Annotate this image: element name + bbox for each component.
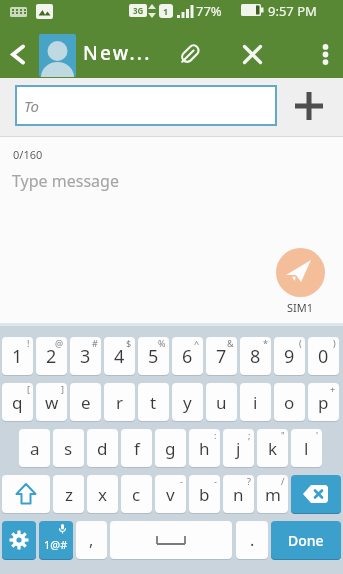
staticText: c <box>132 483 141 506</box>
button[interactable]: v <box>155 475 186 513</box>
button[interactable]: u <box>206 383 237 421</box>
button[interactable]: a <box>19 429 50 467</box>
staticText: 9:57 PM <box>268 2 317 20</box>
button[interactable]: k <box>257 429 288 467</box>
button[interactable]: z <box>53 475 84 513</box>
staticText: u <box>216 391 227 414</box>
staticText: g <box>165 437 176 460</box>
button[interactable]: 9 <box>274 337 305 375</box>
staticText: w <box>45 391 59 414</box>
button[interactable]: g <box>155 429 186 467</box>
button[interactable]: 3 <box>70 337 101 375</box>
staticText: + <box>330 383 336 395</box>
staticText: 9 <box>284 344 295 369</box>
button[interactable] <box>288 85 329 126</box>
staticText: i <box>253 391 258 414</box>
button[interactable]: 4 <box>104 337 135 375</box>
staticText: 77% <box>196 2 222 20</box>
button[interactable]: c <box>121 475 152 513</box>
staticText: ) <box>333 337 336 349</box>
staticText: - <box>214 475 217 487</box>
staticText: $ <box>126 337 132 349</box>
button[interactable] <box>276 248 325 297</box>
button[interactable]: s <box>53 429 84 467</box>
staticText: - <box>180 475 183 487</box>
staticText: New... <box>83 40 152 66</box>
button[interactable] <box>314 40 336 68</box>
button[interactable]: r <box>104 383 135 421</box>
staticText: / <box>281 475 285 487</box>
button[interactable] <box>110 521 232 559</box>
button[interactable] <box>238 40 266 68</box>
staticText: % <box>158 337 166 349</box>
staticText: ' <box>316 429 319 441</box>
button[interactable]: x <box>87 475 118 513</box>
staticText: 2 <box>46 344 57 369</box>
staticText: a <box>30 437 40 460</box>
button[interactable]: y <box>172 383 203 421</box>
staticText: ] <box>61 383 64 395</box>
button[interactable]: d <box>87 429 118 467</box>
button[interactable]: , <box>76 521 107 559</box>
button[interactable] <box>2 475 50 513</box>
staticText: 0/160 <box>13 147 43 162</box>
staticText: d <box>97 437 108 460</box>
button[interactable] <box>2 521 36 559</box>
staticText: 3G <box>133 5 144 16</box>
button[interactable]: e <box>70 383 101 421</box>
button[interactable]: m <box>257 475 288 513</box>
button[interactable]: i <box>240 383 271 421</box>
button[interactable]: 2 <box>36 337 67 375</box>
button[interactable]: 7 <box>206 337 237 375</box>
button[interactable]: To <box>15 85 277 126</box>
button[interactable]: n <box>223 475 254 513</box>
staticText: ^ <box>194 337 200 349</box>
staticText: 6 <box>182 344 193 369</box>
button[interactable]: 8 <box>240 337 271 375</box>
staticText: ; <box>248 429 251 441</box>
staticText: x <box>98 483 107 506</box>
staticText: : <box>214 429 217 441</box>
button[interactable]: h <box>189 429 220 467</box>
button[interactable]: t <box>138 383 169 421</box>
staticText: y <box>183 391 192 414</box>
staticText: @ <box>55 337 64 349</box>
button[interactable]: b <box>189 475 220 513</box>
staticText: m <box>265 483 281 506</box>
button[interactable]: l <box>291 429 322 467</box>
staticText: ? <box>247 475 251 487</box>
staticText: Type message <box>12 170 119 192</box>
button[interactable]: Done <box>271 521 341 559</box>
button[interactable]: w <box>36 383 67 421</box>
staticText: k <box>268 437 278 460</box>
staticText: z <box>65 483 73 506</box>
staticText: " <box>281 429 285 441</box>
button[interactable] <box>175 39 205 69</box>
staticText: 0 <box>318 344 329 369</box>
staticText: 5 <box>148 344 159 369</box>
staticText: # <box>92 337 98 349</box>
button[interactable]: . <box>236 521 268 559</box>
staticText: & <box>227 337 234 349</box>
staticText: j <box>236 437 241 460</box>
staticText: 7 <box>216 344 227 369</box>
button[interactable]: f <box>121 429 152 467</box>
button[interactable]: j <box>223 429 254 467</box>
staticText: 1 <box>163 5 169 17</box>
button[interactable] <box>2 36 34 72</box>
button[interactable]: p <box>308 383 339 421</box>
staticText: t <box>150 391 157 414</box>
button[interactable]: q <box>2 383 33 421</box>
button[interactable]: 5 <box>138 337 169 375</box>
button[interactable]: 6 <box>172 337 203 375</box>
staticText: ! <box>27 337 30 349</box>
staticText: Done <box>288 531 324 550</box>
button[interactable]: 0 <box>308 337 339 375</box>
button[interactable] <box>39 34 76 77</box>
staticText: , <box>89 529 94 551</box>
button[interactable]: 1 <box>2 337 33 375</box>
staticText: 1@# <box>44 537 68 552</box>
button[interactable]: o <box>274 383 305 421</box>
button[interactable]: 1@# <box>39 521 73 559</box>
button[interactable] <box>291 475 341 513</box>
